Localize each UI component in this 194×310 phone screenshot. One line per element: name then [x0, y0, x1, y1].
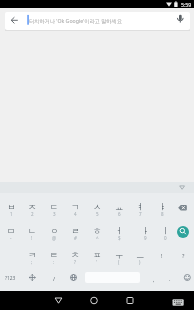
button[interactable] [22, 219, 44, 242]
button[interactable] [86, 219, 108, 242]
button[interactable] [129, 195, 151, 218]
staticText: ( [118, 259, 120, 265]
button[interactable] [108, 219, 130, 242]
staticText: ㅡ [136, 250, 145, 261]
button[interactable] [175, 182, 189, 193]
button[interactable] [65, 219, 87, 242]
staticText: ㅕ [136, 202, 145, 213]
staticText: ㅋ [28, 250, 37, 261]
staticText: ㅁ [7, 226, 16, 237]
button[interactable] [173, 243, 194, 266]
staticText: 3 [53, 211, 56, 217]
button[interactable] [22, 266, 44, 289]
staticText: , [153, 276, 155, 283]
staticText: ㄴ [28, 226, 37, 237]
button[interactable] [151, 195, 173, 218]
button[interactable] [86, 195, 108, 218]
staticText: # [74, 235, 77, 241]
button[interactable] [43, 266, 65, 289]
button[interactable] [173, 195, 194, 218]
staticText: ? [182, 252, 185, 259]
button[interactable] [43, 243, 65, 266]
staticText: ㄱ [71, 202, 80, 213]
staticText: 5 [96, 211, 99, 217]
button[interactable] [0, 219, 22, 242]
button[interactable] [143, 266, 165, 289]
staticText: ㅑ [158, 202, 167, 213]
button[interactable] [0, 195, 22, 218]
button[interactable] [177, 266, 194, 289]
staticText: ㅓ [115, 226, 124, 237]
staticText: ; [31, 259, 33, 265]
button[interactable] [65, 243, 87, 266]
staticText: 5:59 [181, 1, 192, 8]
staticText: ㅊ [71, 250, 80, 261]
staticText: 6 [118, 211, 121, 217]
button[interactable] [47, 291, 71, 310]
staticText: 터치하거나 'Ok Google'이라고 말하세요 [29, 17, 122, 24]
button[interactable] [129, 243, 151, 266]
staticText: ㄷ [50, 202, 59, 213]
staticText: ㄹ [71, 226, 80, 237]
staticText: ㅏ [141, 226, 150, 237]
staticText: ? [74, 259, 76, 265]
button[interactable] [151, 219, 173, 242]
staticText: ㅅ [93, 202, 102, 213]
staticText: - [10, 235, 12, 241]
staticText: . [169, 275, 171, 282]
button[interactable] [63, 266, 85, 289]
button[interactable] [177, 226, 189, 238]
staticText: ) [139, 259, 141, 265]
staticText: ㅈ [28, 202, 37, 213]
button[interactable] [170, 296, 186, 308]
staticText: @ [52, 235, 57, 241]
staticText: ㅣ [161, 226, 170, 237]
staticText: / [53, 275, 56, 282]
staticText: 8 [161, 211, 164, 217]
button[interactable] [108, 195, 130, 218]
button[interactable] [118, 291, 142, 310]
button[interactable] [22, 243, 44, 266]
staticText: ㅎ [93, 226, 102, 237]
button[interactable] [86, 243, 108, 266]
staticText: ㅍ [93, 250, 102, 261]
staticText: ^ [96, 235, 99, 241]
staticText: ㅇ [50, 226, 59, 237]
staticText: : [53, 259, 55, 265]
button[interactable] [82, 291, 106, 310]
staticText: ㅌ [50, 250, 59, 261]
button[interactable] [43, 219, 65, 242]
button[interactable] [65, 195, 87, 218]
staticText: ! [31, 235, 33, 241]
button[interactable] [22, 195, 44, 218]
staticText: 7 [139, 211, 142, 217]
staticText: 1 [10, 211, 13, 217]
button[interactable] [129, 219, 151, 242]
button[interactable] [5, 12, 190, 30]
staticText: ' [96, 259, 98, 265]
button[interactable] [43, 195, 65, 218]
staticText: 9 [144, 235, 147, 241]
staticText: ! [161, 252, 163, 259]
staticText: 4 [74, 211, 77, 217]
staticText: $ [118, 235, 121, 241]
staticText: ㅛ [115, 202, 124, 213]
staticText: 0 [164, 235, 167, 241]
button[interactable] [0, 266, 21, 289]
staticText: 2 [31, 211, 34, 217]
staticText: ㅜ [115, 250, 124, 261]
button[interactable] [108, 243, 130, 266]
button[interactable] [151, 243, 173, 266]
staticText: ?123 [5, 275, 16, 282]
staticText: ㅂ [7, 202, 16, 213]
